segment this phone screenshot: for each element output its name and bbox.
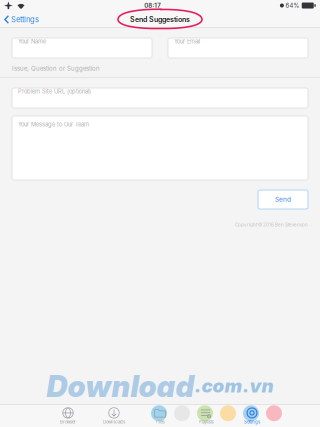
staticText: Send (275, 196, 291, 203)
button[interactable]: Your Name (12, 38, 152, 58)
button[interactable]: Files (137, 405, 183, 427)
button[interactable]: Playlists (183, 405, 229, 427)
staticText: Your Email (174, 38, 200, 45)
button[interactable]: Downloads (91, 405, 137, 427)
button[interactable]: Problem Site URL (optional) (12, 88, 308, 108)
button[interactable]: Browser (45, 405, 91, 427)
button[interactable]: Settings (0, 12, 39, 27)
button[interactable]: Your Email (168, 38, 308, 58)
staticText: Downloads (103, 419, 125, 425)
staticText: Settings (11, 15, 39, 24)
staticText: Browser (60, 419, 76, 425)
staticText: Send Suggestions (130, 15, 190, 24)
button[interactable]: Issue, Question or Suggestion (0, 59, 320, 78)
staticText: Settings (244, 419, 260, 425)
staticText: Playlists (198, 419, 213, 425)
staticText: Copyright © 2016 Ben Stevenson (235, 222, 308, 227)
staticText: Issue, Question or Suggestion (12, 65, 100, 72)
staticText: 64% (285, 2, 299, 9)
button[interactable]: Settings (229, 405, 275, 427)
staticText: Your Name (18, 38, 46, 45)
staticText: 08:17 (144, 2, 161, 9)
button[interactable]: Send (258, 190, 308, 209)
staticText: Download (46, 368, 194, 404)
staticText: Files (155, 419, 164, 425)
button[interactable]: Your Message to Our Team (12, 116, 308, 180)
staticText: Your Message to Our Team (18, 121, 89, 128)
staticText: .com.vn (194, 374, 273, 397)
staticText: Problem Site URL (optional) (18, 88, 91, 95)
